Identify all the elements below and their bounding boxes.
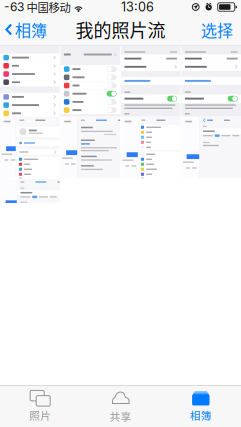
staticText: 照片 xyxy=(29,407,51,423)
button[interactable]: 照片 xyxy=(0,386,80,427)
button[interactable] xyxy=(0,117,60,178)
button[interactable] xyxy=(181,45,241,116)
staticText: -63 xyxy=(4,0,24,14)
button[interactable]: 共享 xyxy=(80,386,161,427)
button[interactable] xyxy=(0,45,60,116)
staticText: 相簿 xyxy=(190,407,212,423)
staticText: 选择 xyxy=(201,18,233,41)
staticText: 中国移动 xyxy=(26,0,70,15)
button[interactable] xyxy=(60,117,120,178)
button[interactable]: 相簿 xyxy=(161,386,241,427)
staticText: 13:06 xyxy=(121,0,154,15)
button[interactable] xyxy=(121,45,181,116)
staticText: 共享 xyxy=(109,408,131,424)
staticText: 我的照片流 xyxy=(75,16,165,43)
staticText: 相簿 xyxy=(15,18,47,41)
button[interactable] xyxy=(121,117,181,178)
button[interactable] xyxy=(0,179,60,203)
button[interactable]: 选择 xyxy=(193,14,241,45)
button[interactable] xyxy=(181,117,241,178)
button[interactable]: 相簿 xyxy=(0,14,53,45)
button[interactable] xyxy=(60,45,120,116)
